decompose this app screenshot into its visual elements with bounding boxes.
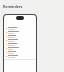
staticText: Reminders [3, 4, 23, 9]
button[interactable] [4, 42, 36, 46]
button[interactable] [4, 38, 36, 42]
button[interactable] [4, 26, 36, 30]
button[interactable] [4, 34, 36, 38]
button[interactable] [4, 50, 36, 54]
button[interactable] [4, 46, 36, 50]
button[interactable] [4, 30, 36, 34]
button[interactable] [4, 54, 36, 58]
